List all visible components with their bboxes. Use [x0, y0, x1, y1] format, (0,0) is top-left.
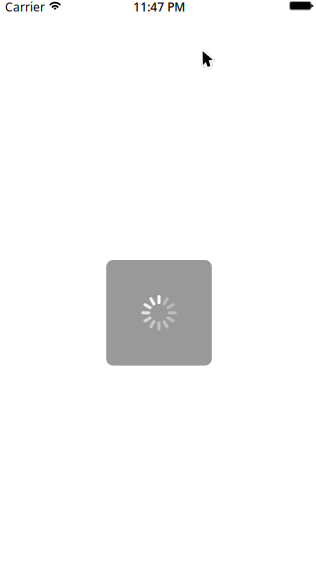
staticText: 11:47 PM — [133, 0, 185, 15]
staticText: Carrier — [5, 0, 45, 15]
group: Loading — [106, 260, 212, 366]
